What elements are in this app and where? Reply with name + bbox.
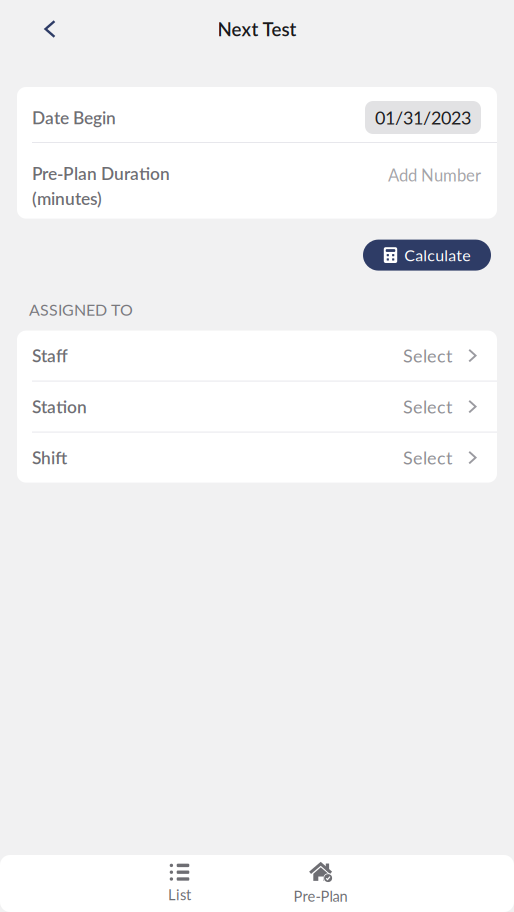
staticText: Staff (32, 345, 68, 366)
staticText: Station (32, 396, 87, 417)
button[interactable]: Add Number (388, 165, 481, 185)
button[interactable]: List (109, 855, 250, 912)
button[interactable]: Calculate (363, 240, 491, 271)
button[interactable]: Station (17, 382, 497, 432)
staticText: Date Begin (32, 107, 116, 128)
staticText: (minutes) (32, 188, 102, 209)
staticText: Select (403, 447, 452, 468)
staticText: 01/31/2023 (375, 107, 471, 128)
button[interactable]: Back (27, 6, 73, 52)
button[interactable]: 01/31/2023 (365, 101, 481, 134)
staticText: List (168, 886, 191, 903)
staticText: Add Number (388, 165, 481, 185)
button[interactable]: Shift (17, 433, 497, 483)
staticText: Next Test (217, 18, 296, 40)
staticText: Select (403, 345, 452, 366)
staticText: ASSIGNED TO (29, 300, 133, 319)
staticText: Select (403, 396, 452, 417)
staticText: Pre-Plan (293, 887, 347, 905)
button[interactable]: Staff (17, 331, 497, 381)
staticText: Shift (32, 447, 67, 468)
staticText: Calculate (404, 245, 470, 265)
staticText: Pre-Plan Duration (32, 163, 170, 184)
button[interactable]: Pre-Plan (250, 855, 391, 912)
